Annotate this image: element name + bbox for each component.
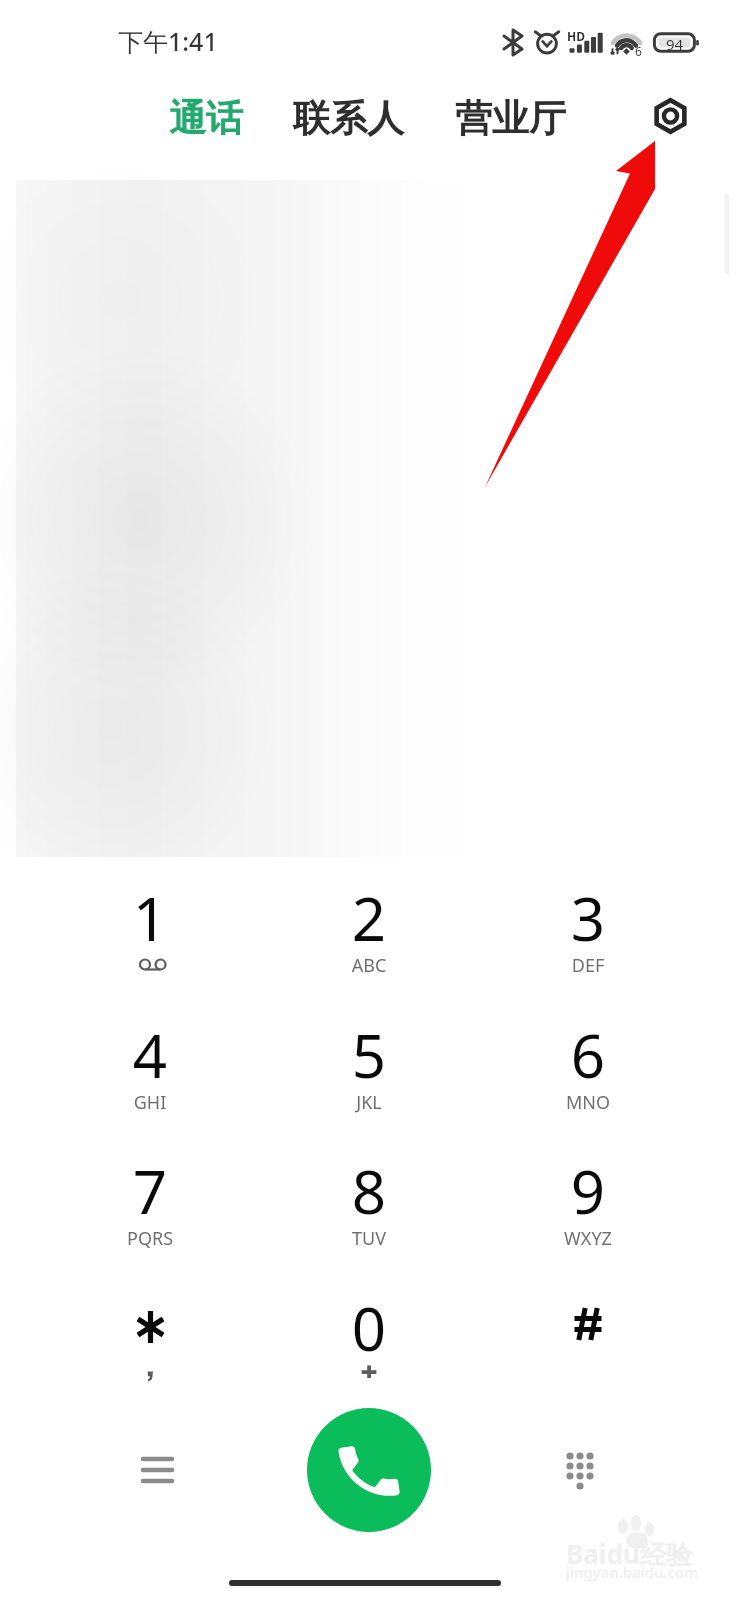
staticText: 8 (309, 1150, 429, 1236)
staticText: DEF (528, 953, 648, 979)
button[interactable] (50, 860, 250, 990)
button[interactable] (50, 1270, 250, 1400)
button[interactable] (50, 1133, 250, 1263)
button[interactable]: More options (127, 1440, 187, 1500)
staticText: PQRS (90, 1226, 210, 1252)
staticText: TUV (309, 1226, 429, 1252)
staticText: MNO (528, 1090, 648, 1116)
staticText: 联系人 (293, 95, 404, 142)
staticText: jingyan.baidu.com (566, 1562, 699, 1582)
staticText: 9 (528, 1150, 648, 1236)
button[interactable] (488, 1270, 688, 1400)
button[interactable] (269, 1270, 469, 1400)
button[interactable] (488, 1133, 688, 1263)
button[interactable]: Call (307, 1408, 431, 1532)
button[interactable] (269, 860, 469, 990)
staticText: 4 (90, 1014, 210, 1100)
staticText: 5 (309, 1014, 429, 1100)
staticText: HD (567, 28, 585, 44)
button[interactable] (269, 997, 469, 1127)
staticText: ABC (309, 953, 429, 979)
button[interactable]: 联系人 (279, 81, 417, 145)
staticText: 3 (528, 877, 648, 963)
staticText: 营业厅 (455, 95, 566, 142)
staticText: 6 (528, 1014, 648, 1100)
button[interactable] (488, 860, 688, 990)
button[interactable]: Settings (640, 86, 700, 146)
staticText: 94 (659, 34, 690, 51)
button[interactable] (50, 997, 250, 1127)
button[interactable] (269, 1133, 469, 1263)
button[interactable]: 营业厅 (441, 81, 579, 145)
staticText: 1 (90, 877, 210, 963)
button[interactable] (488, 997, 688, 1127)
button[interactable]: 通话 (155, 81, 257, 145)
staticText: 下午1:41 (118, 24, 218, 58)
staticText: 2 (309, 877, 429, 963)
staticText: 7 (90, 1150, 210, 1236)
staticText: 通话 (169, 95, 243, 142)
staticText: WXYZ (528, 1226, 648, 1252)
staticText: GHI (90, 1090, 210, 1116)
staticText: Baidu经验 (566, 1536, 692, 1572)
staticText: 6 (635, 43, 642, 59)
staticText: 0 (309, 1287, 429, 1373)
staticText: JKL (309, 1090, 429, 1116)
button[interactable]: Dialpad (550, 1438, 610, 1498)
